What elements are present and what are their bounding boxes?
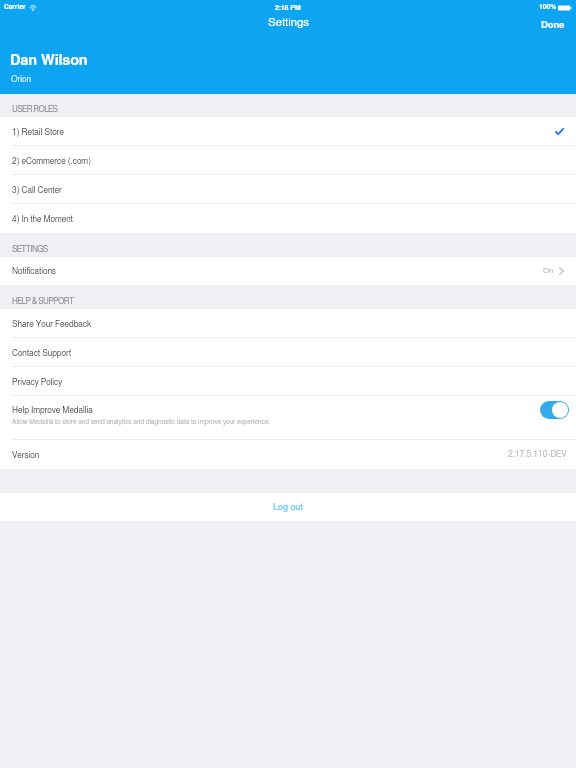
staticText: Done — [541, 20, 565, 29]
button[interactable]: 4) In the Moment — [0, 204, 576, 233]
staticText: 2) eCommerce (.com) — [12, 157, 91, 165]
staticText: Contact Support — [12, 349, 72, 357]
button[interactable]: 3) Call Center — [0, 175, 576, 204]
staticText: 2.17.5.110-DEV — [508, 450, 567, 459]
staticText: Orion — [11, 75, 31, 83]
button[interactable]: Version — [0, 440, 576, 469]
staticText: 1) Retail Store — [12, 128, 64, 136]
button[interactable]: Help Improve Medallia — [0, 396, 576, 440]
staticText: USER ROLES — [12, 105, 58, 113]
staticText: 2:18 PM — [275, 4, 301, 11]
staticText: 3) Call Center — [12, 186, 62, 194]
staticText: Version — [12, 451, 40, 459]
button[interactable]: 1) Retail Store — [0, 117, 576, 146]
button[interactable]: Notifications — [0, 257, 576, 285]
button[interactable]: Privacy Policy — [0, 367, 576, 396]
button[interactable]: 2) eCommerce (.com) — [0, 146, 576, 175]
staticText: Log out — [273, 503, 303, 512]
staticText: Privacy Policy — [12, 378, 63, 386]
button[interactable]: Contact Support — [0, 338, 576, 367]
staticText: Notifications — [12, 267, 56, 275]
staticText: 100% — [539, 4, 557, 11]
button[interactable]: Help Improve Medallia toggle — [540, 401, 569, 419]
staticText: Share Your Feedback — [12, 320, 92, 328]
staticText: HELP & SUPPORT — [12, 297, 74, 305]
staticText: Help Improve Medallia — [12, 406, 93, 414]
staticText: Dan Wilson — [10, 53, 88, 67]
staticText: Carrier — [4, 4, 26, 11]
staticText: 4) In the Moment — [12, 215, 73, 223]
staticText: Allow Medallia to store and send analyti… — [12, 419, 271, 426]
staticText: SETTINGS — [12, 245, 48, 253]
button[interactable]: Share Your Feedback — [0, 309, 576, 338]
staticText: Settings — [268, 17, 309, 29]
button[interactable]: Done — [541, 0, 576, 29]
button[interactable]: Log out — [0, 493, 576, 521]
staticText: On — [543, 267, 554, 275]
